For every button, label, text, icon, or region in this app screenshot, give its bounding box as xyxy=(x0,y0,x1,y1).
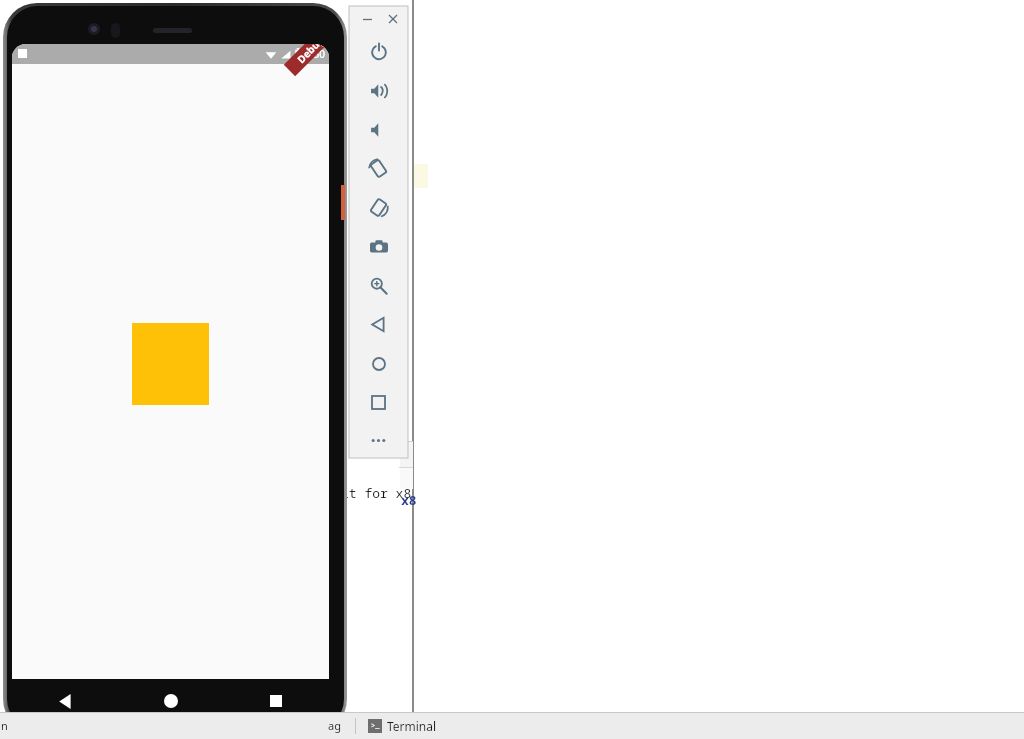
button[interactable]: Back xyxy=(349,305,408,344)
button[interactable]: Take screenshot xyxy=(349,227,408,266)
button[interactable]: Close xyxy=(384,10,402,28)
button[interactable]: Rotate right xyxy=(349,188,408,227)
button[interactable]: Minimize xyxy=(358,10,376,28)
button[interactable]: Rotate left xyxy=(349,149,408,188)
button[interactable]: Recent apps xyxy=(253,679,299,723)
staticText: n xyxy=(1,718,8,733)
button[interactable]: Power xyxy=(349,32,408,71)
button[interactable]: Zoom xyxy=(349,266,408,305)
staticText: ag xyxy=(328,718,341,733)
button[interactable]: >_ xyxy=(368,718,437,734)
button[interactable]: Volume up xyxy=(349,71,408,110)
staticText: Debug xyxy=(294,44,327,66)
staticText: lt for x8 xyxy=(341,484,412,502)
button[interactable]: Home xyxy=(148,679,194,723)
button[interactable]: Overview xyxy=(349,383,408,422)
button[interactable]: Home xyxy=(349,344,408,383)
button[interactable]: More xyxy=(349,422,408,458)
staticText: 2:50 xyxy=(305,47,325,61)
staticText: x8 xyxy=(401,491,417,509)
staticText: >_ xyxy=(371,721,380,731)
staticText: Terminal xyxy=(387,718,437,734)
button[interactable]: Volume down xyxy=(349,110,408,149)
button[interactable]: Back xyxy=(42,679,88,723)
